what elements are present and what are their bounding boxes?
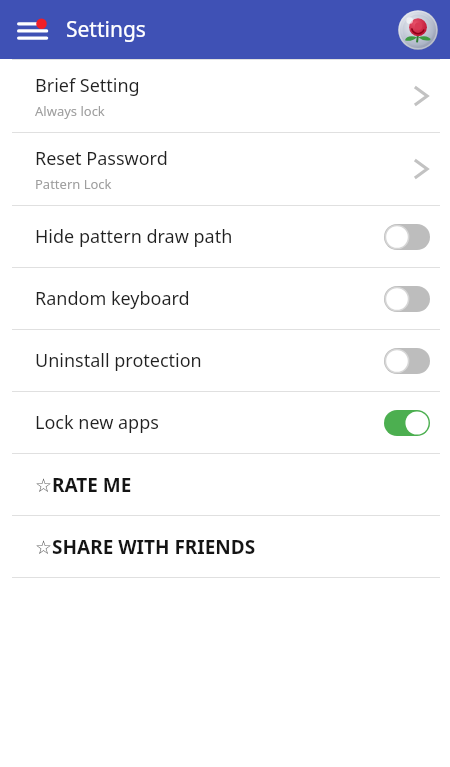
staticText: ☆RATE ME — [35, 472, 132, 498]
button[interactable]: Off — [384, 348, 430, 374]
button[interactable]: Off — [384, 286, 430, 312]
button[interactable]: ☆RATE ME — [0, 454, 450, 515]
button[interactable]: Open navigation menu — [10, 6, 58, 54]
staticText: Reset Password — [35, 146, 168, 171]
staticText: ☆SHARE WITH FRIENDS — [35, 534, 256, 560]
button[interactable]: Reset Password — [0, 133, 450, 205]
button[interactable]: ☆SHARE WITH FRIENDS — [0, 516, 450, 577]
button[interactable]: Uninstall protection — [0, 330, 450, 391]
button[interactable]: App icon — [394, 6, 442, 54]
staticText: Always lock — [35, 102, 105, 120]
button[interactable]: Hide pattern draw path — [0, 206, 450, 267]
button[interactable]: Random keyboard — [0, 268, 450, 329]
button[interactable]: Brief Setting — [0, 60, 450, 132]
button[interactable]: On — [384, 410, 430, 436]
staticText: Settings — [66, 15, 146, 44]
staticText: Lock new apps — [35, 410, 384, 435]
staticText: Brief Setting — [35, 73, 140, 98]
button[interactable]: Off — [384, 224, 430, 250]
staticText: Uninstall protection — [35, 348, 384, 373]
staticText: Random keyboard — [35, 286, 384, 311]
staticText: Pattern Lock — [35, 175, 112, 193]
button[interactable]: Lock new apps — [0, 392, 450, 453]
staticText: Hide pattern draw path — [35, 224, 384, 249]
